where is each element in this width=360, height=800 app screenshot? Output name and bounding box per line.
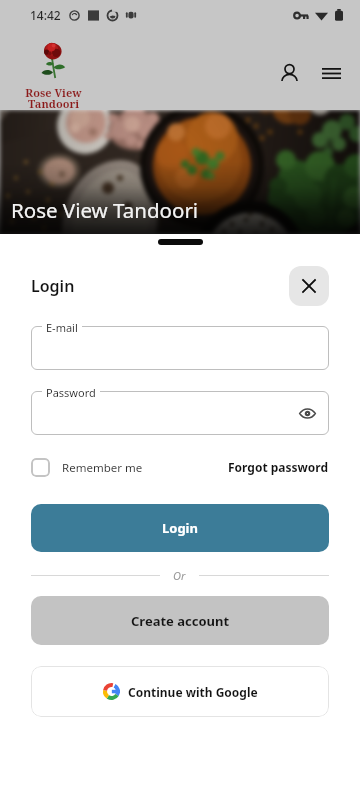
staticText: Rose View Tandoori — [25, 85, 82, 112]
staticText: Login — [31, 275, 75, 297]
button[interactable]: Show password — [295, 401, 319, 425]
staticText: Continue with Google — [128, 684, 258, 700]
button[interactable]: Menu — [313, 55, 349, 91]
staticText: Rose View Tandoori — [11, 196, 199, 224]
staticText: Password — [46, 385, 96, 400]
staticText: Remember me — [62, 460, 143, 476]
button[interactable] — [31, 391, 329, 435]
staticText: Forgot password — [228, 459, 329, 475]
staticText: 14:42 — [30, 7, 61, 23]
button[interactable]: Remember me — [31, 458, 143, 477]
button[interactable]: Login — [31, 504, 329, 552]
button[interactable]: Account — [271, 55, 307, 91]
staticText: Login — [162, 519, 198, 537]
button[interactable]: Close — [289, 266, 329, 306]
button[interactable]: Forgot password — [228, 459, 329, 475]
button[interactable]: Continue with Google — [31, 666, 329, 717]
staticText: E-mail — [46, 320, 78, 335]
button[interactable]: Create account — [31, 596, 329, 645]
button[interactable] — [31, 326, 329, 370]
staticText: Or — [173, 568, 186, 582]
staticText: Create account — [131, 612, 230, 630]
